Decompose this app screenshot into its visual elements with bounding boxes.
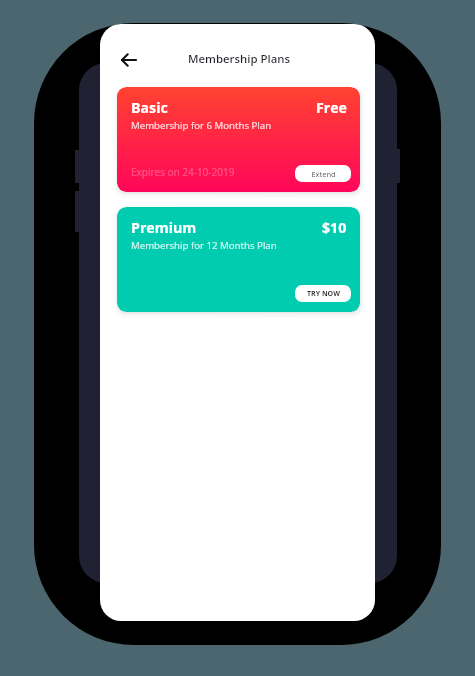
button[interactable]: TRY NOW (295, 285, 351, 302)
button[interactable]: Premium (117, 207, 360, 312)
staticText: Basic (131, 98, 168, 117)
staticText: Membership Plans (188, 51, 291, 67)
staticText: Expires on 24-10-2019 (131, 165, 235, 179)
button[interactable]: Basic (117, 87, 360, 192)
staticText: Free (316, 98, 347, 117)
staticText: Membership for 12 Months Plan (131, 239, 277, 252)
staticText: Membership for 6 Months Plan (131, 119, 272, 132)
staticText: $10 (322, 218, 347, 237)
staticText: Premium (131, 218, 197, 237)
button[interactable]: Back (115, 46, 143, 74)
staticText: TRY NOW (307, 289, 340, 299)
staticText: Extend (311, 169, 336, 179)
button[interactable]: Extend (295, 165, 351, 182)
